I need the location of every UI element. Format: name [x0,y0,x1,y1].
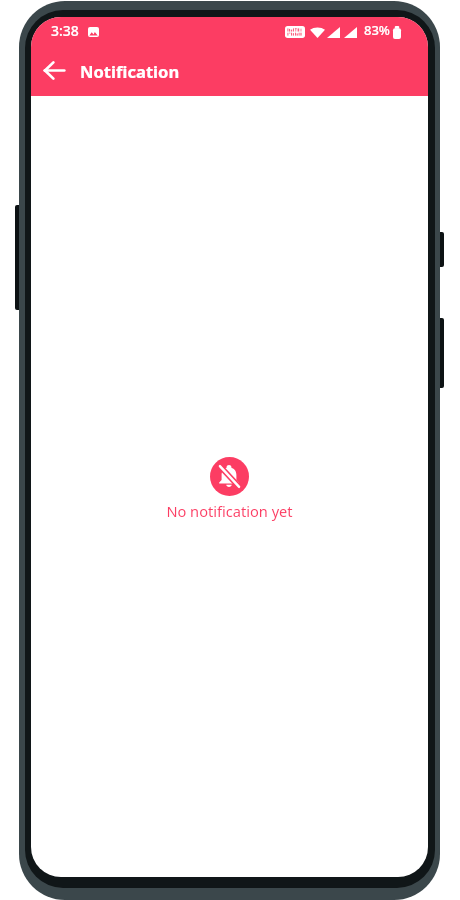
button[interactable]: Back [35,51,73,89]
staticText: Notification [80,60,180,83]
staticText: 3:38 [51,21,79,40]
staticText: 83% [364,21,390,39]
staticText: No notification yet [166,501,293,521]
